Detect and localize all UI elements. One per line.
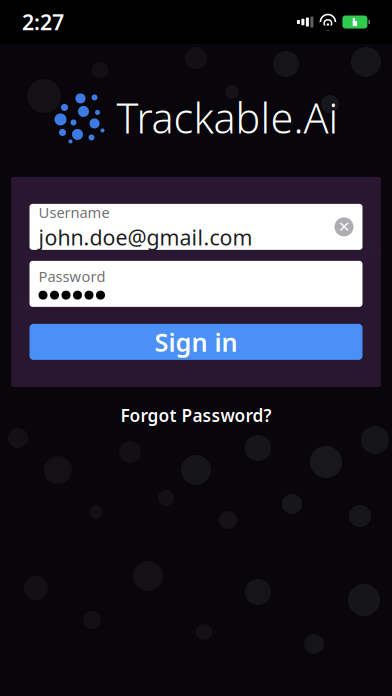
button[interactable]: Sign in <box>29 324 362 360</box>
button[interactable]: Forgot Password? <box>106 399 285 432</box>
button[interactable]: Password <box>29 261 362 307</box>
staticText: ✕ <box>338 219 350 235</box>
staticText: Password <box>38 267 105 286</box>
staticText: Forgot Password? <box>120 404 271 427</box>
staticText: 2:27 <box>22 8 64 36</box>
staticText: Sign in <box>154 325 237 359</box>
button[interactable]: Username <box>29 204 362 250</box>
staticText: Trackable.Ai <box>116 90 338 145</box>
staticText: john.doe@gmail.com <box>38 223 252 251</box>
staticText: Username <box>38 202 109 222</box>
